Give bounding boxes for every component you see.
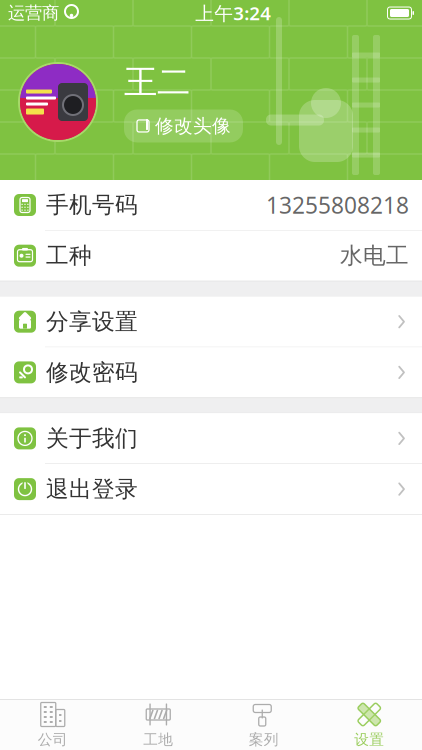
button[interactable]: 修改头像 xyxy=(124,109,243,142)
staticText: 13255808218 xyxy=(266,190,409,220)
button[interactable]: 工地 xyxy=(105,700,211,750)
button[interactable]: 手机号码 xyxy=(0,180,422,230)
button[interactable]: 设置 xyxy=(316,700,422,750)
staticText: 手机号码 xyxy=(46,191,138,219)
button[interactable]: 分享设置 xyxy=(0,297,422,347)
button[interactable]: 退出登录 xyxy=(0,464,422,514)
staticText: 修改头像 xyxy=(155,114,231,137)
staticText: 工地 xyxy=(143,730,173,748)
button[interactable]: 案列 xyxy=(211,700,316,750)
staticText: 修改密码 xyxy=(46,358,138,386)
staticText: 设置 xyxy=(354,730,384,748)
button[interactable]: 关于我们 xyxy=(0,413,422,463)
staticText: 运营商 xyxy=(8,2,59,24)
button[interactable]: 公司 xyxy=(0,700,105,750)
staticText: 关于我们 xyxy=(46,424,138,452)
button[interactable]: 工种 xyxy=(0,231,422,281)
button[interactable]: 修改密码 xyxy=(0,347,422,397)
staticText: 上午3:24 xyxy=(195,1,271,25)
staticText: 案列 xyxy=(249,730,279,748)
staticText: 工种 xyxy=(46,242,92,270)
staticText: 退出登录 xyxy=(46,475,138,503)
staticText: 王二 xyxy=(124,62,190,102)
staticText: 水电工 xyxy=(340,242,409,270)
staticText: 公司 xyxy=(38,730,68,748)
staticText: 分享设置 xyxy=(46,308,138,336)
